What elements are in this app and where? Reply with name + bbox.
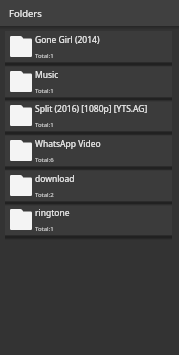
button[interactable]: Music (5, 66, 172, 97)
staticText: Folders (9, 7, 42, 20)
staticText: Total:1 (35, 87, 54, 95)
staticText: Split (2016) [1080p] [YTS.AG] (35, 103, 148, 115)
staticText: download (35, 173, 75, 185)
button[interactable]: WhatsApp Video (5, 135, 172, 166)
staticText: Total:1 (35, 52, 54, 60)
staticText: Total:1 (35, 121, 54, 129)
button[interactable]: Gone Girl (2014) (5, 31, 172, 62)
staticText: Total:6 (35, 156, 54, 164)
button[interactable]: ringtone (5, 204, 172, 235)
staticText: Total:1 (35, 225, 54, 233)
button[interactable]: Split (2016) [1080p] [YTS.AG] (5, 100, 172, 131)
staticText: ringtone (35, 207, 70, 219)
button[interactable]: download (5, 170, 172, 201)
staticText: Music (35, 69, 59, 81)
staticText: Gone Girl (2014) (35, 34, 100, 46)
staticText: WhatsApp Video (35, 138, 101, 150)
staticText: Total:2 (35, 191, 54, 199)
